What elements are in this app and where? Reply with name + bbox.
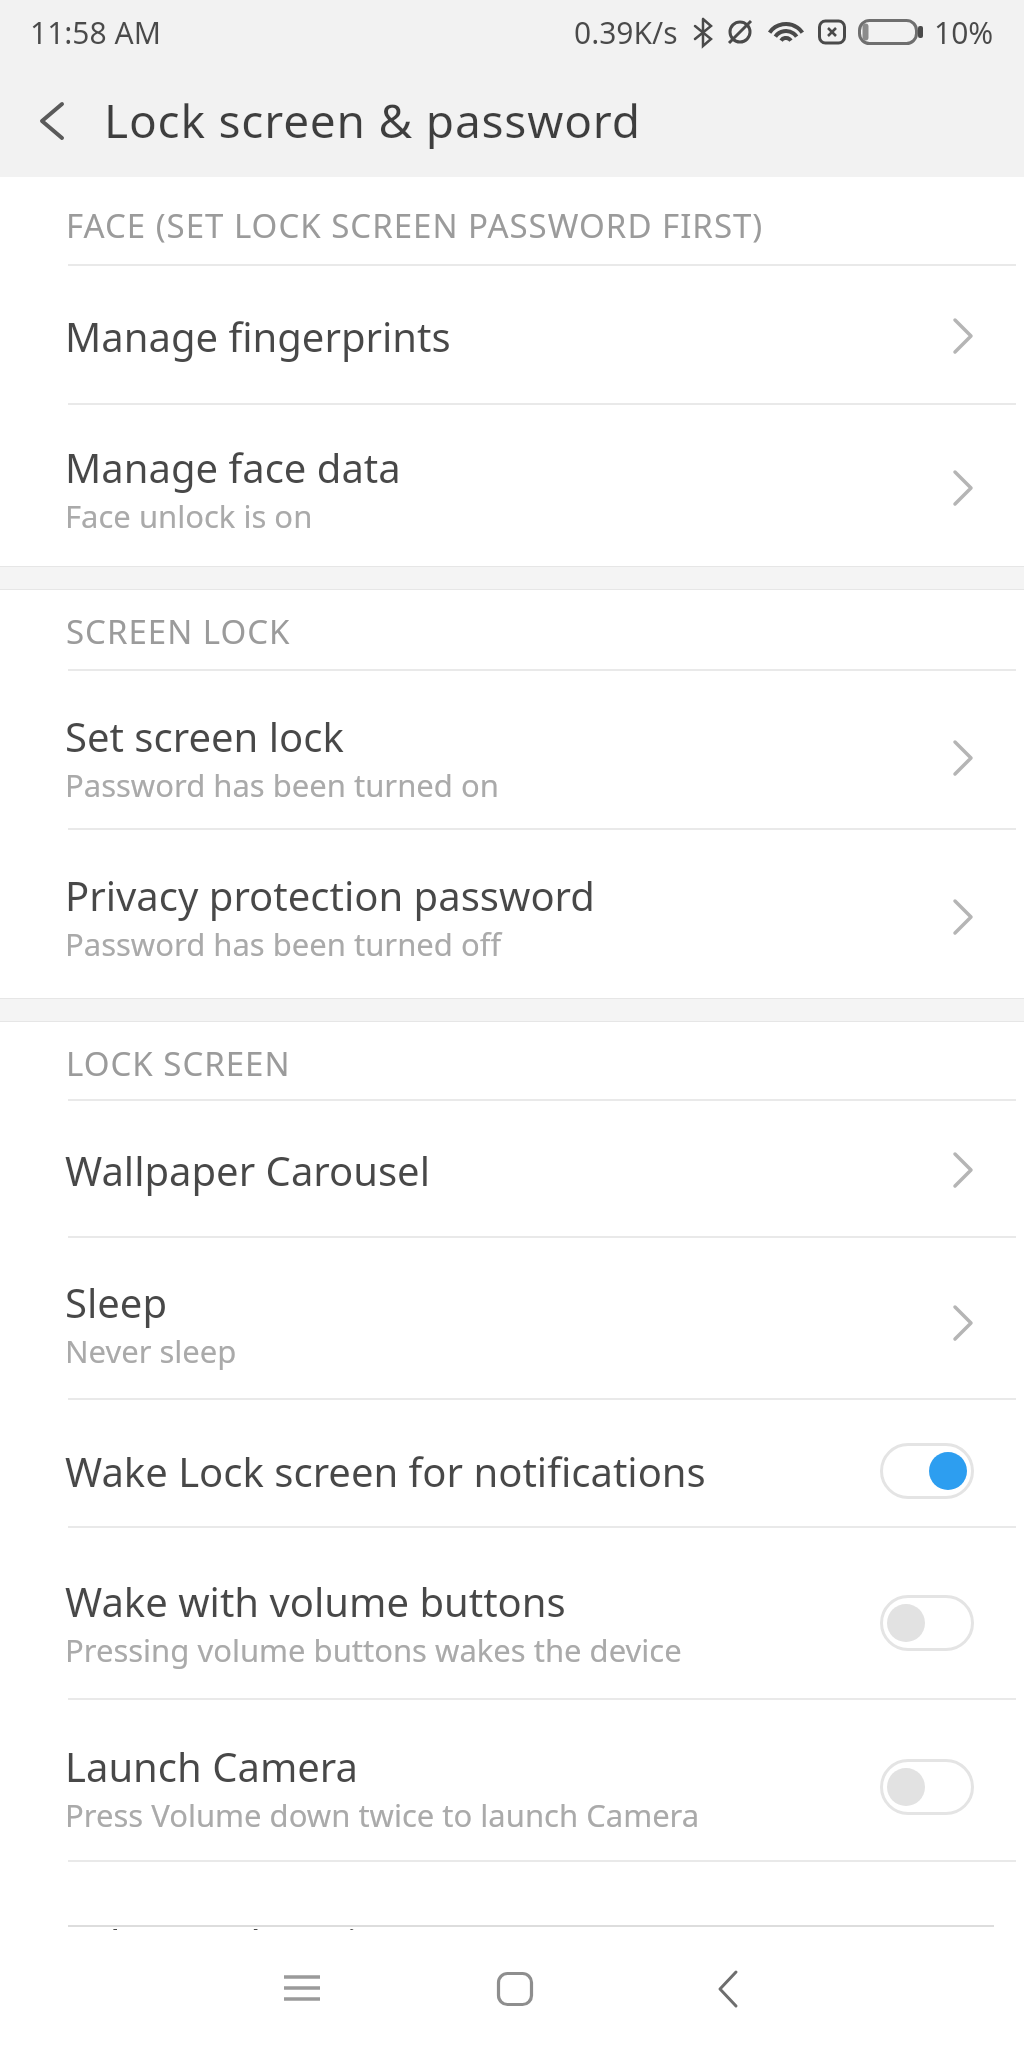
staticText: Pressing volume buttons wakes the device — [65, 1629, 682, 1671]
staticText: Set screen lock — [65, 709, 344, 763]
staticText: Never sleep — [65, 1330, 237, 1372]
button[interactable]: Set screen lock — [0, 671, 1024, 830]
staticText: Sleep — [65, 1275, 167, 1329]
staticText: Press Volume down twice to launch Camera — [65, 1794, 700, 1836]
button[interactable] — [274, 1961, 330, 2017]
staticText: 10% — [934, 12, 994, 53]
button[interactable]: Privacy protection password — [0, 830, 1024, 998]
button[interactable] — [487, 1961, 543, 2017]
staticText: Manage fingerprints — [65, 309, 451, 363]
staticText: LOCK SCREEN — [66, 1041, 291, 1086]
staticText: Privacy protection password — [65, 868, 595, 922]
staticText: Password has been turned off — [65, 923, 501, 965]
staticText: Lock screen & password — [104, 89, 641, 152]
button[interactable]: Launch Camera — [0, 1700, 1024, 1862]
button[interactable]: Wallpaper Carousel — [0, 1101, 1024, 1238]
button[interactable]: Manage fingerprints — [0, 266, 1024, 405]
staticText: SCREEN LOCK — [66, 609, 291, 654]
staticText: 11:58 AM — [30, 12, 161, 53]
button[interactable]: Manage face data — [0, 405, 1024, 566]
button[interactable]: Wake Lock screen for notifications — [0, 1400, 1024, 1528]
staticText: Wake Lock screen for notifications — [65, 1444, 706, 1498]
button[interactable] — [38, 93, 94, 149]
staticText: Wake with volume buttons — [65, 1574, 566, 1628]
staticText: Launch Camera — [65, 1739, 358, 1793]
staticText: Manage face data — [65, 440, 401, 494]
button[interactable]: Sleep — [0, 1238, 1024, 1400]
button[interactable] — [700, 1961, 756, 2017]
staticText: Face unlock is on — [65, 495, 313, 537]
staticText: Password has been turned on — [65, 764, 499, 806]
staticText: Wallpaper Carousel — [65, 1143, 430, 1197]
staticText: Advanced settings — [68, 1916, 429, 1930]
staticText: FACE (SET LOCK SCREEN PASSWORD FIRST) — [66, 203, 764, 248]
staticText: 0.39K/s — [574, 12, 678, 53]
button[interactable]: Wake with volume buttons — [0, 1528, 1024, 1700]
